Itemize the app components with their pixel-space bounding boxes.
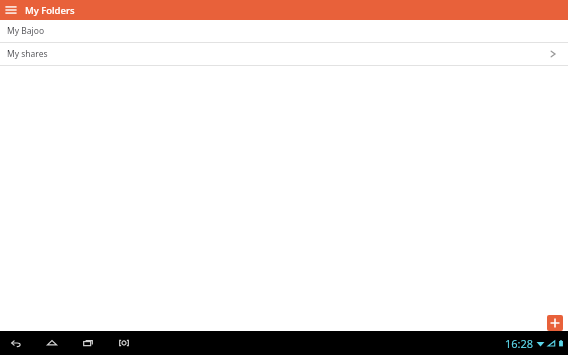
button[interactable]: My Bajoo (0, 20, 568, 42)
staticText: My Folders (25, 4, 75, 17)
button[interactable]: Add (547, 315, 563, 331)
button[interactable]: My shares (0, 43, 568, 65)
button[interactable]: Recent apps (78, 333, 98, 353)
button[interactable]: Screenshot (114, 333, 134, 353)
staticText: My Bajoo (7, 25, 45, 37)
button[interactable]: Open navigation drawer (4, 3, 18, 17)
button[interactable]: Home (42, 333, 62, 353)
button[interactable]: Back (6, 333, 26, 353)
staticText: 16:28 (504, 336, 533, 351)
staticText: My shares (7, 48, 48, 60)
